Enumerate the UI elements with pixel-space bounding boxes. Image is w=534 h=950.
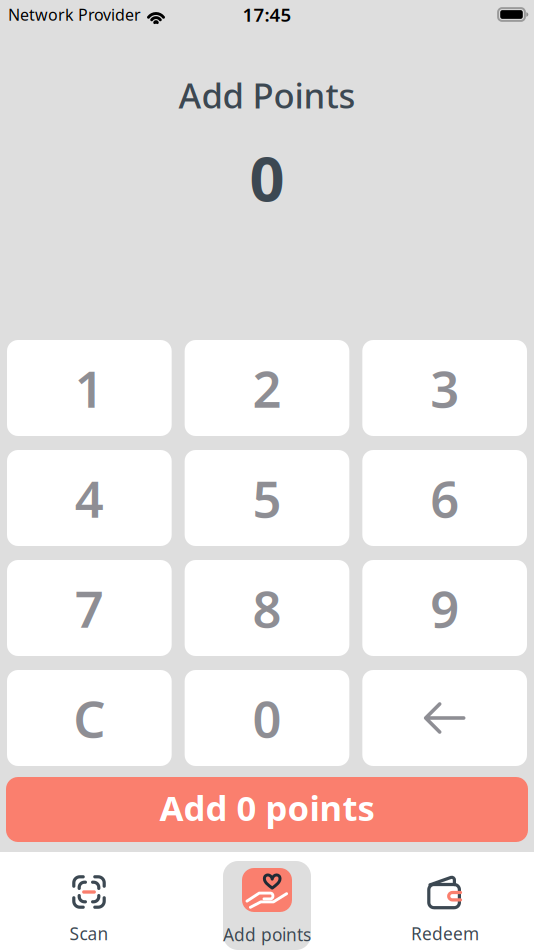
button[interactable]: Redeem (356, 852, 534, 950)
staticText: Network Provider (8, 4, 141, 25)
staticText: C (73, 684, 105, 752)
staticText: 0 (252, 684, 281, 752)
staticText: 0 (249, 137, 284, 218)
button[interactable]: 7 (7, 560, 172, 656)
staticText: Scan (69, 922, 108, 945)
button[interactable]: Add points (178, 852, 356, 950)
button[interactable]: Scan (0, 852, 178, 950)
staticText: 3 (430, 354, 459, 422)
button[interactable]: 1 (7, 340, 172, 436)
button[interactable]: 8 (185, 560, 349, 656)
staticText: 8 (252, 574, 281, 642)
staticText: 5 (252, 464, 281, 532)
staticText: 6 (430, 464, 459, 532)
button[interactable]: 4 (7, 450, 172, 546)
staticText: 4 (75, 464, 104, 532)
staticText: 7 (75, 574, 104, 642)
button[interactable]: 0 (185, 670, 349, 766)
button[interactable]: 2 (185, 340, 349, 436)
staticText: 17:45 (242, 2, 291, 27)
staticText: Add points (223, 923, 311, 946)
staticText: 9 (430, 574, 459, 642)
button[interactable]: 9 (362, 560, 527, 656)
button[interactable]: Backspace (362, 670, 527, 766)
staticText: 1 (75, 354, 104, 422)
staticText: Redeem (411, 922, 479, 945)
button[interactable]: C (7, 670, 172, 766)
button[interactable]: 6 (362, 450, 527, 546)
button[interactable]: 3 (362, 340, 527, 436)
button[interactable]: Add 0 points (6, 777, 528, 842)
staticText: Add 0 points (159, 784, 374, 830)
staticText: 2 (252, 354, 281, 422)
button[interactable]: 5 (185, 450, 349, 546)
staticText: Add Points (178, 72, 355, 118)
